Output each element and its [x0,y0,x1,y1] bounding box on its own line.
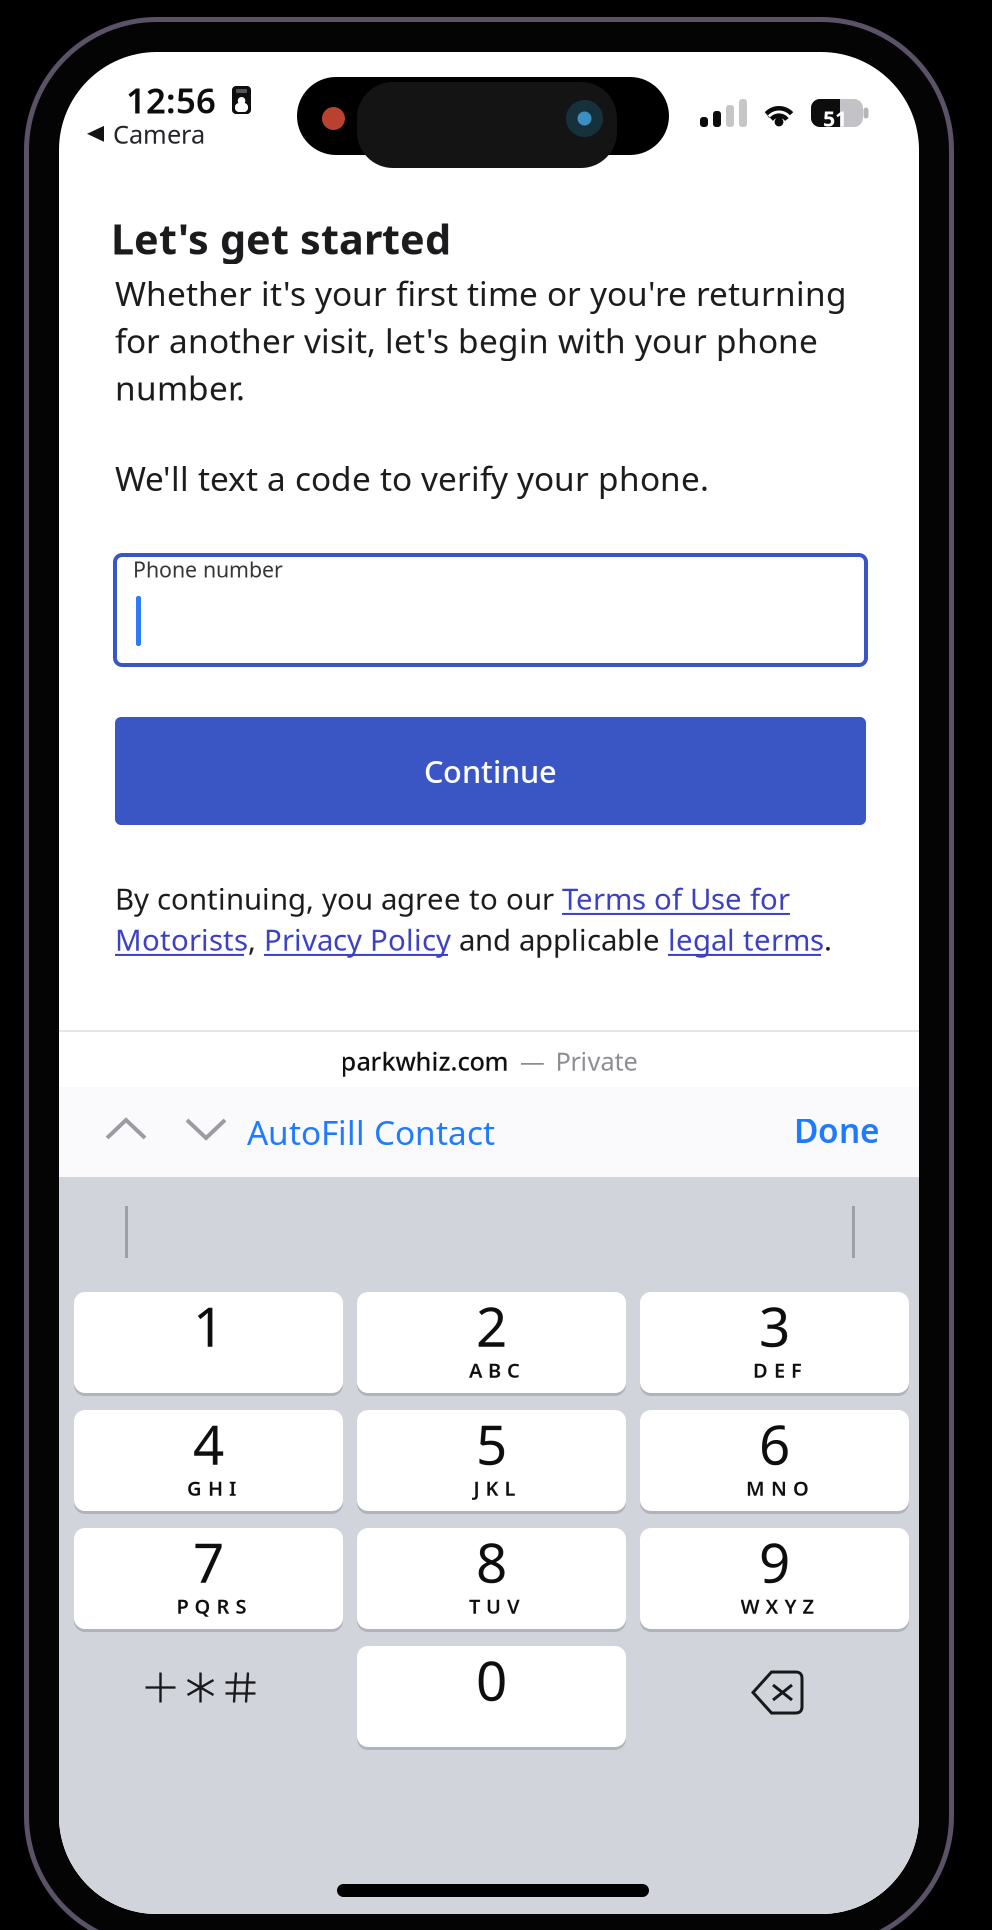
staticText: and applicable [451,920,668,959]
button[interactable]: 3 [640,1292,909,1396]
staticText: Continue [424,751,557,791]
button[interactable]: Delete [640,1646,909,1747]
button[interactable]: Next field [185,1117,227,1141]
staticText: By continuing, you agree to our [115,879,562,918]
button[interactable]: 8 [357,1528,626,1632]
button[interactable]: 9 [640,1528,909,1632]
staticText: GHI [187,1475,236,1501]
button[interactable]: 1 [74,1292,343,1396]
staticText: Terms of Use for [562,879,790,918]
button[interactable]: 5 [357,1410,626,1514]
staticText: DEF [753,1357,802,1383]
staticText: AutoFill Contact [247,1110,495,1154]
staticText: WXYZ [740,1593,814,1619]
button[interactable]: Continue [115,717,866,825]
staticText: Motorists [115,920,248,959]
button[interactable]: legal terms [668,920,824,959]
button[interactable]: AutoFill Contact [247,1110,495,1154]
staticText: 3 [759,1289,790,1362]
button[interactable]: Done [794,1108,880,1152]
staticText: 5 [476,1407,507,1480]
staticText: legal terms [668,920,824,959]
button[interactable]: Terms of Use for [562,879,790,918]
button[interactable]: 0 [357,1646,626,1750]
staticText: 8 [476,1525,507,1598]
staticText: Done [794,1108,880,1152]
staticText: Camera [113,117,205,151]
button[interactable]: 2 [357,1292,626,1396]
staticText: Private [555,1044,637,1078]
staticText: 6 [759,1407,790,1480]
staticText: 12:56 [126,77,216,123]
staticText: Phone number [133,555,283,583]
button[interactable]: Previous field [105,1117,147,1141]
staticText: — [519,1044,544,1078]
button[interactable]: 4 [74,1410,343,1514]
staticText: PQRS [176,1593,246,1619]
button[interactable]: Motorists [115,920,248,959]
staticText: JKL [473,1475,515,1501]
button[interactable]: Plus, star, pound [74,1646,343,1747]
button[interactable]: 6 [640,1410,909,1514]
button[interactable]: 7 [74,1528,343,1632]
staticText: We'll text a code to verify your phone. [115,456,709,500]
staticText: 7 [193,1525,224,1598]
staticText: 1 [193,1289,224,1362]
staticText: parkwhiz.com [340,1044,508,1078]
staticText: . [824,920,832,959]
button[interactable]: Privacy Policy [264,920,451,959]
staticText: Let's get started [111,211,451,266]
staticText: , [248,920,264,959]
staticText: 0 [476,1643,507,1716]
staticText: 4 [193,1407,224,1480]
staticText: Whether it's your first time or you're r… [115,271,847,410]
staticText: Privacy Policy [264,920,451,959]
staticText: TUV [469,1593,520,1619]
staticText: 2 [476,1289,507,1362]
staticText: ABC [469,1357,520,1383]
staticText: 9 [759,1525,790,1598]
staticText: MNO [746,1475,809,1501]
staticText: 51 [823,104,847,132]
